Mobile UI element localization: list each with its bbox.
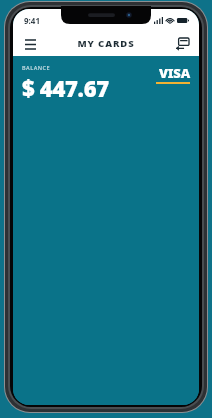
staticText: 9:41 [24, 15, 40, 26]
staticText: BALANCE [22, 64, 51, 71]
staticText: VISA [159, 64, 190, 82]
button[interactable]: BALANCE [13, 56, 199, 405]
staticText: MY CARDS [77, 37, 135, 50]
button[interactable]: Transfer money [172, 34, 192, 54]
staticText: $ 447.67 [22, 73, 109, 103]
button[interactable]: Open navigation menu [20, 34, 40, 54]
